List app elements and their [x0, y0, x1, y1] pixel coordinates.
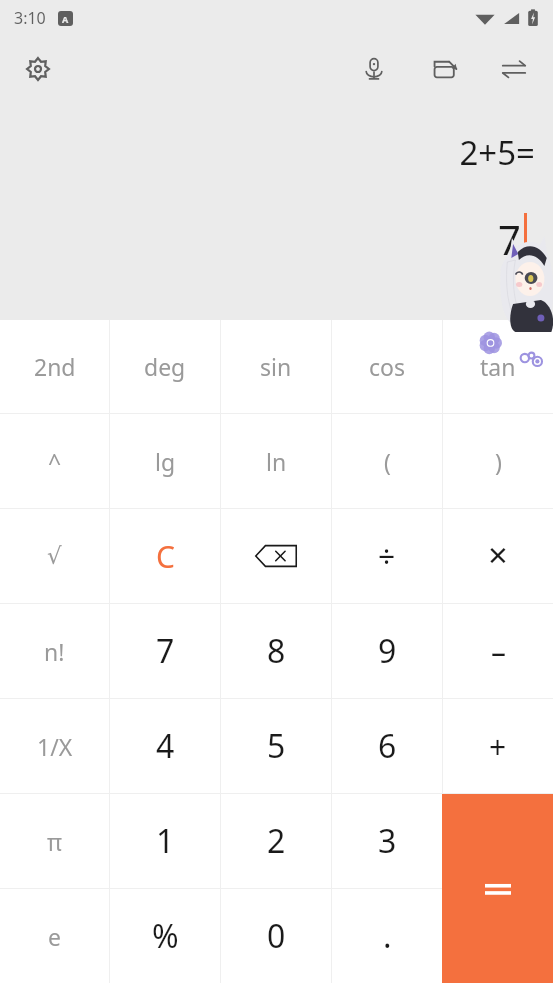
button[interactable]: n!: [0, 604, 109, 698]
button[interactable]: %: [110, 889, 220, 983]
staticText: –: [491, 631, 506, 672]
staticText: deg: [144, 351, 186, 382]
button[interactable]: Voice input: [351, 46, 397, 92]
staticText: lg: [155, 446, 176, 477]
button[interactable]: Backspace: [221, 509, 331, 603]
button[interactable]: ^: [0, 414, 109, 508]
staticText: 5: [267, 724, 286, 768]
staticText: e: [48, 921, 61, 952]
button[interactable]: √: [0, 509, 109, 603]
button[interactable]: 5: [221, 699, 331, 793]
button[interactable]: tan: [443, 320, 553, 413]
button[interactable]: ln: [221, 414, 331, 508]
button[interactable]: .: [332, 889, 442, 983]
staticText: 8: [267, 629, 286, 673]
button[interactable]: cos: [332, 320, 442, 413]
staticText: π: [47, 826, 63, 857]
button[interactable]: 2: [221, 794, 331, 888]
staticText: 4: [156, 724, 175, 768]
button[interactable]: 1/X: [0, 699, 109, 793]
staticText: 0: [267, 914, 286, 958]
staticText: (: [384, 446, 391, 477]
button[interactable]: π: [0, 794, 109, 888]
staticText: 2nd: [34, 351, 76, 382]
button[interactable]: Unit converter: [491, 46, 537, 92]
button[interactable]: 6: [332, 699, 442, 793]
staticText: n!: [44, 636, 65, 667]
staticText: cos: [369, 351, 405, 382]
staticText: 7: [498, 212, 521, 266]
staticText: %: [152, 914, 179, 958]
button[interactable]: 3: [332, 794, 442, 888]
staticText: 3: [378, 819, 397, 863]
button[interactable]: 2nd: [0, 320, 109, 413]
button[interactable]: (: [332, 414, 442, 508]
staticText: +: [489, 726, 507, 767]
button[interactable]: 4: [110, 699, 220, 793]
button[interactable]: –: [443, 604, 553, 698]
staticText: ÷: [378, 536, 396, 577]
button[interactable]: Equals: [442, 794, 553, 983]
staticText: 7: [156, 629, 175, 673]
staticText: ^: [48, 446, 62, 477]
button[interactable]: C: [110, 509, 220, 603]
button[interactable]: Settings: [16, 47, 60, 91]
staticText: .: [383, 914, 392, 958]
staticText: sin: [260, 351, 292, 382]
staticText: tan: [480, 351, 516, 382]
staticText: 1: [156, 819, 175, 863]
staticText: ✕: [487, 541, 509, 571]
button[interactable]: ✕: [443, 509, 553, 603]
button[interactable]: 8: [221, 604, 331, 698]
button[interactable]: lg: [110, 414, 220, 508]
button[interactable]: 1: [110, 794, 220, 888]
button[interactable]: Rotate screen: [423, 46, 469, 92]
staticText: 2: [267, 819, 286, 863]
button[interactable]: sin: [221, 320, 331, 413]
staticText: 9: [378, 629, 397, 673]
button[interactable]: 7: [110, 604, 220, 698]
staticText: ln: [266, 446, 287, 477]
button[interactable]: ÷: [332, 509, 442, 603]
button[interactable]: deg: [110, 320, 220, 413]
staticText: C: [156, 536, 175, 577]
staticText: A: [62, 13, 69, 25]
staticText: 2+5=: [459, 130, 535, 175]
button[interactable]: +: [443, 699, 553, 793]
staticText: 6: [378, 724, 397, 768]
staticText: 3:10: [14, 7, 46, 29]
staticText: √: [47, 543, 62, 570]
button[interactable]: 0: [221, 889, 331, 983]
button[interactable]: ): [443, 414, 553, 508]
staticText: 1/X: [37, 731, 73, 762]
staticText: ): [495, 446, 502, 477]
button[interactable]: 9: [332, 604, 442, 698]
button[interactable]: e: [0, 889, 109, 983]
